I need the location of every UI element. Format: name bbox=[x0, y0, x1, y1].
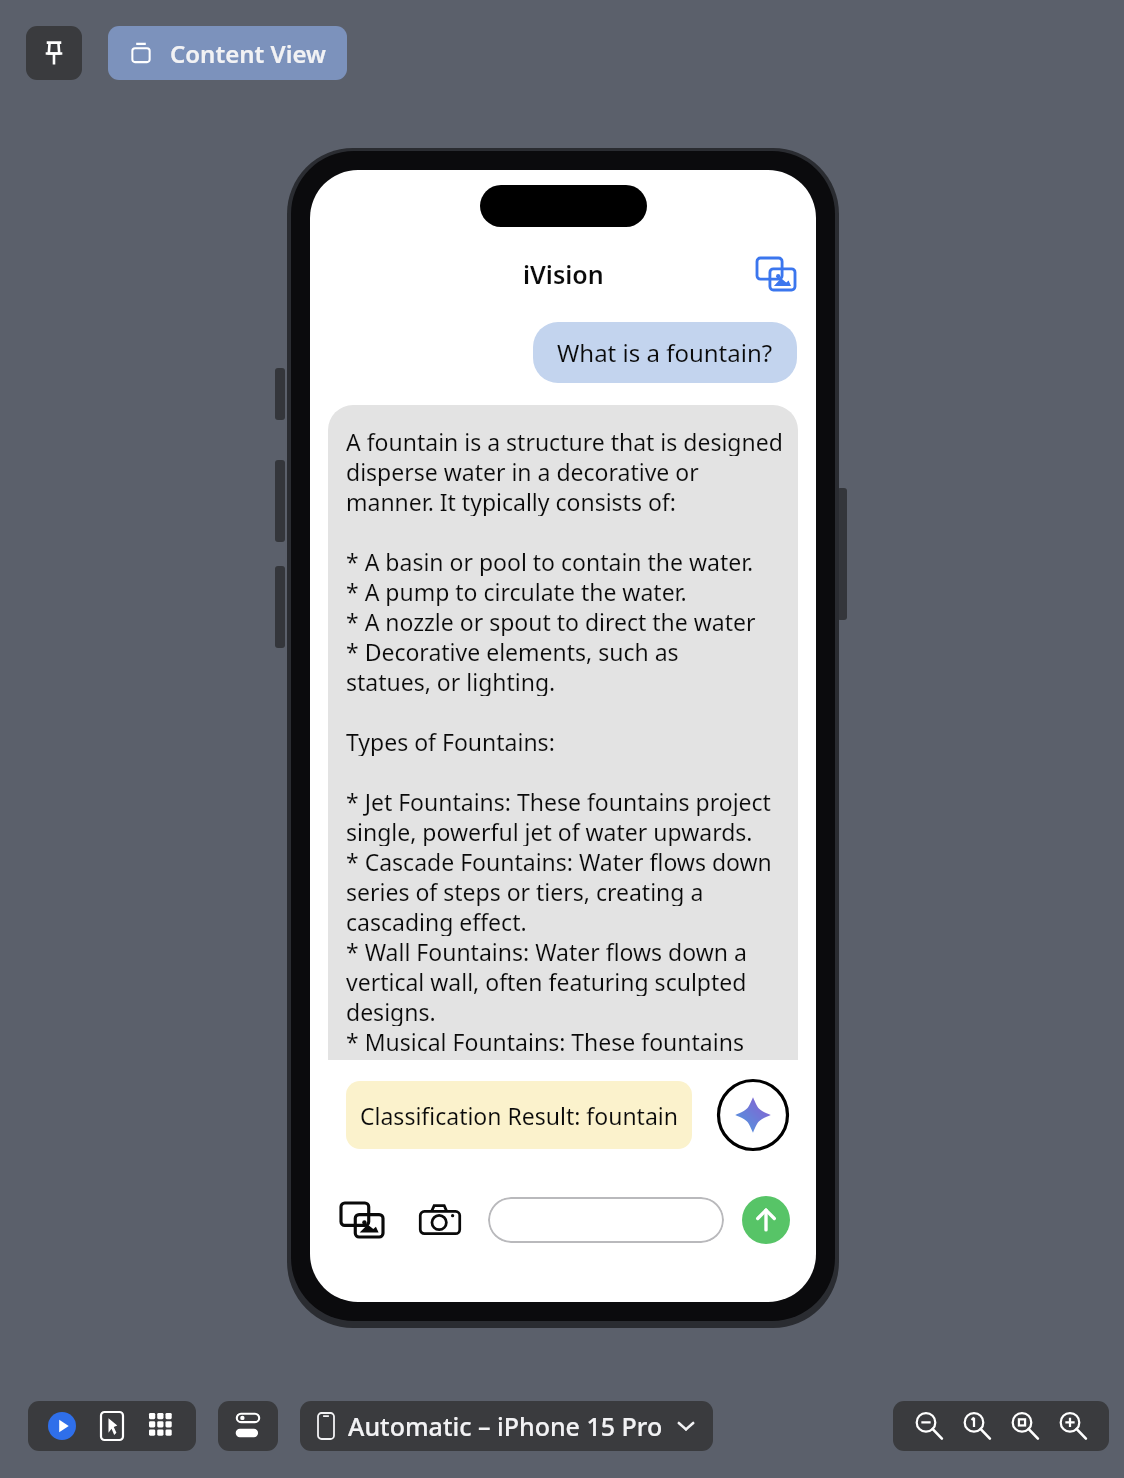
button[interactable]: Actual size bbox=[953, 1402, 1001, 1450]
button[interactable]: Select mode bbox=[94, 1408, 130, 1444]
button[interactable]: Classification Result: fountain bbox=[346, 1081, 692, 1149]
staticText: * A nozzle or spout to direct the water … bbox=[346, 606, 784, 636]
staticText: vertical wall, often featuring sculpted bbox=[346, 966, 747, 996]
button[interactable]: Photo library bbox=[754, 252, 798, 296]
staticText: statues, or lighting. bbox=[346, 666, 556, 696]
button[interactable]: Zoom in bbox=[1049, 1402, 1097, 1450]
staticText: * Jet Fountains: These fountains project… bbox=[346, 786, 784, 816]
button[interactable]: Run preview bbox=[44, 1408, 80, 1444]
button[interactable]: Preview settings bbox=[218, 1401, 278, 1451]
button[interactable]: Fit bbox=[1001, 1402, 1049, 1450]
button[interactable]: Variants bbox=[144, 1408, 180, 1444]
staticText: designs. bbox=[346, 996, 436, 1026]
staticText: * Decorative elements, such as sculpture… bbox=[346, 636, 784, 666]
button[interactable]: Automatic – iPhone 15 Pro bbox=[300, 1401, 713, 1451]
staticText: iVision bbox=[523, 257, 604, 291]
staticText: manner. It typically consists of: bbox=[346, 486, 676, 516]
staticText: Classification Result: fountain bbox=[360, 1100, 678, 1131]
button[interactable]: Choose photo bbox=[336, 1194, 388, 1246]
button[interactable]: Send bbox=[742, 1196, 790, 1244]
staticText: Content View bbox=[170, 37, 326, 70]
staticText: * Cascade Fountains: Water flows down a bbox=[346, 846, 784, 876]
button[interactable]: A fountain is a structure that is design… bbox=[328, 405, 798, 1060]
button[interactable]: What is a fountain? bbox=[533, 322, 797, 383]
staticText: single, powerful jet of water upwards. bbox=[346, 816, 753, 846]
button[interactable]: Zoom out bbox=[905, 1402, 953, 1450]
staticText: Automatic – iPhone 15 Pro bbox=[348, 1409, 663, 1443]
staticText: cascading effect. bbox=[346, 906, 527, 936]
staticText: * Wall Fountains: Water flows down a bbox=[346, 936, 747, 966]
button[interactable]: Analyze with AI bbox=[716, 1078, 790, 1152]
staticText: A fountain is a structure that is design… bbox=[346, 426, 784, 456]
button[interactable]: Content View bbox=[108, 26, 347, 80]
staticText: What is a fountain? bbox=[557, 336, 773, 369]
button[interactable]: Take photo bbox=[414, 1194, 466, 1246]
staticText: * A basin or pool to contain the water. bbox=[346, 546, 754, 576]
staticText: series of steps or tiers, creating a bbox=[346, 876, 704, 906]
staticText: Types of Fountains: bbox=[346, 726, 555, 756]
button[interactable] bbox=[488, 1197, 724, 1243]
button[interactable]: Pin preview bbox=[26, 26, 82, 80]
staticText: disperse water in a decorative or functi… bbox=[346, 456, 784, 486]
staticText: * Musical Fountains: These fountains use bbox=[346, 1026, 784, 1056]
staticText: * A pump to circulate the water. bbox=[346, 576, 687, 606]
